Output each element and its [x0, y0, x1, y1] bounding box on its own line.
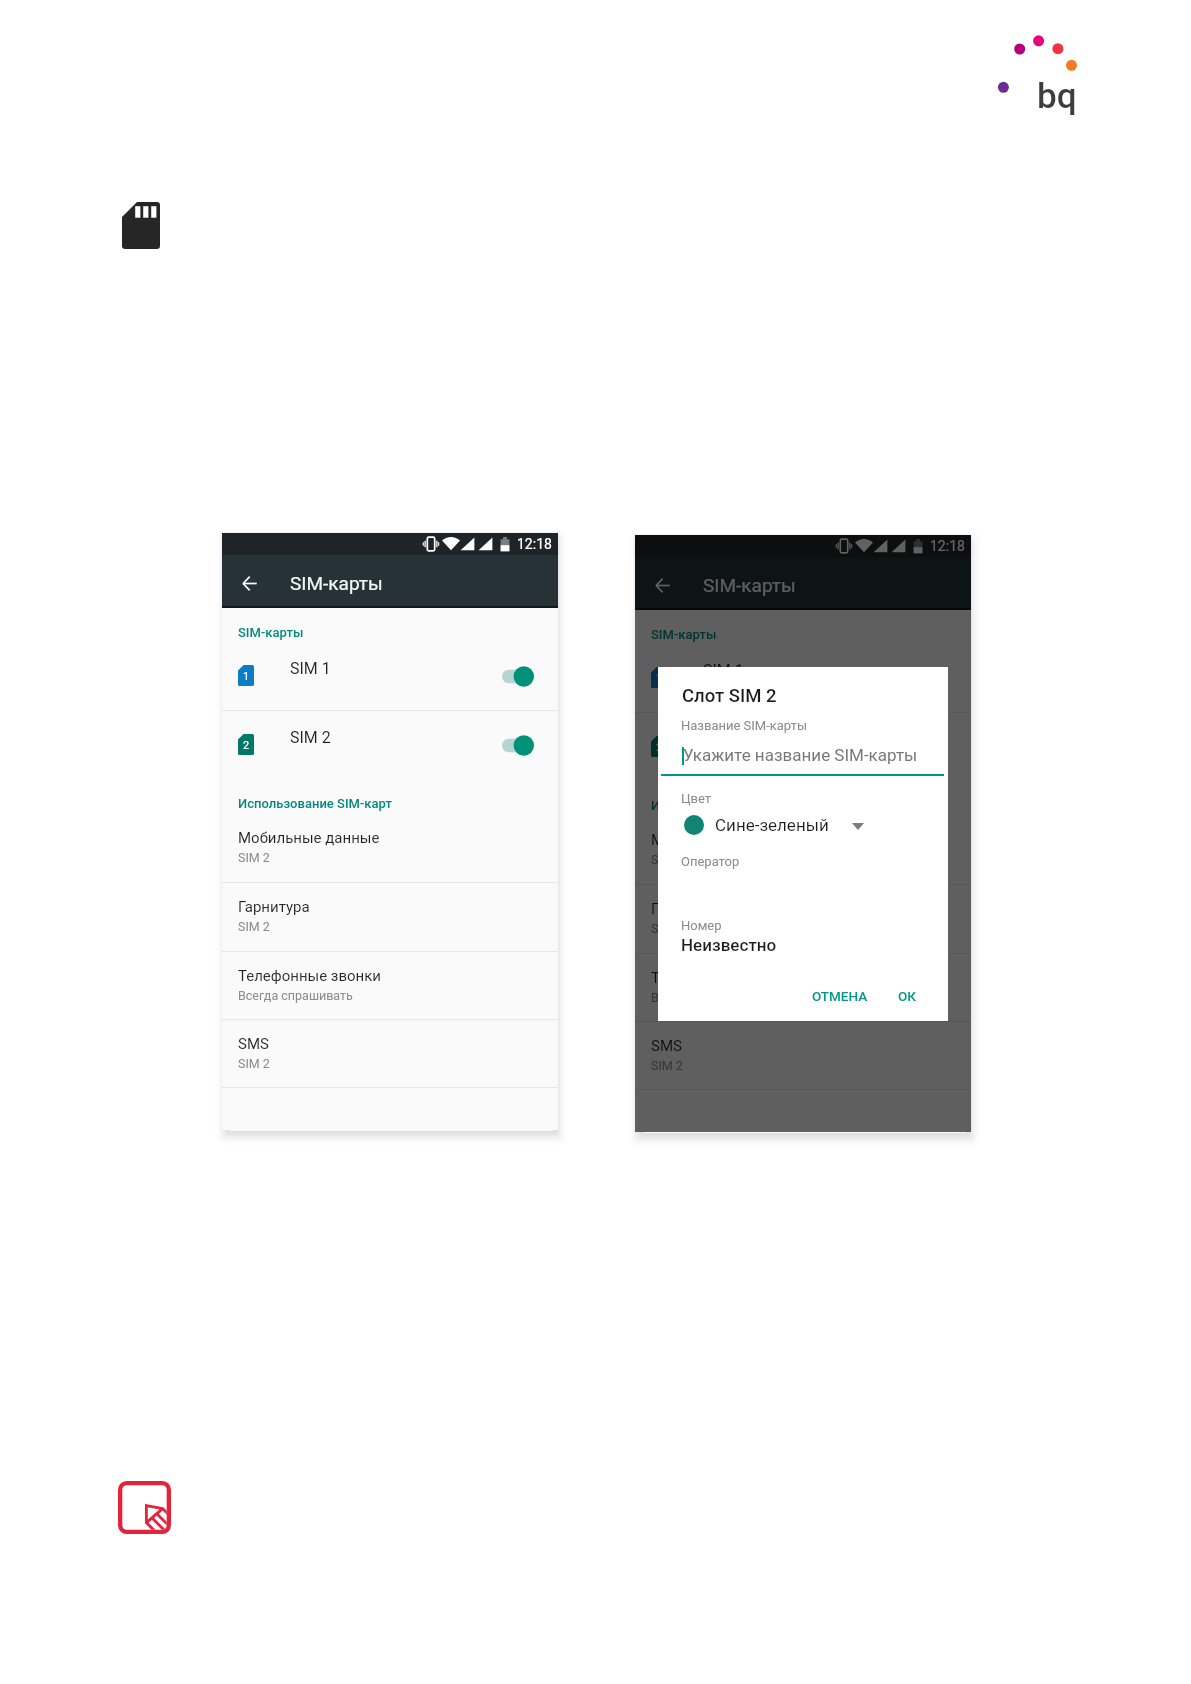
staticText: Слот SIM 2 — [682, 685, 777, 707]
staticText: SIM-карты — [238, 625, 304, 640]
staticText: SMS — [651, 1037, 682, 1055]
staticText: SIM-карты — [703, 574, 796, 596]
button[interactable]: Toggle SIM 1 — [906, 663, 956, 695]
staticText: Всегда спрашивать — [238, 988, 353, 1003]
staticText: Мобильные данные — [651, 831, 793, 849]
staticText: SIM 1 — [703, 661, 744, 680]
button[interactable]: Укажите название SIM-карты — [661, 739, 944, 776]
staticText: Телефонные звонки — [651, 969, 795, 987]
button[interactable]: Телефонные звонки — [635, 953, 971, 1021]
button[interactable]: Сине-зеленый — [680, 809, 870, 843]
staticText: SIM 2 — [651, 852, 683, 867]
staticText: SIM-карты — [290, 572, 383, 594]
staticText: SIM 2 — [651, 921, 683, 936]
staticText: Оператор — [681, 854, 740, 869]
button[interactable]: Гарнитура — [222, 882, 558, 951]
staticText: 1 — [243, 670, 250, 683]
staticText: bq — [1037, 76, 1077, 117]
button[interactable]: 2 — [635, 712, 971, 781]
staticText: Использование SIM-карт — [651, 798, 805, 813]
staticText: Сине-зеленый — [715, 815, 829, 835]
staticText: Мобильные данные — [238, 829, 380, 847]
button[interactable]: Мобильные данные — [635, 815, 971, 883]
staticText: SIM 2 — [238, 850, 270, 865]
button[interactable]: SMS — [222, 1019, 558, 1087]
staticText: Гарнитура — [238, 898, 310, 916]
staticText: 2 — [656, 741, 663, 754]
staticText: SIM 2 — [290, 728, 331, 747]
staticText: Название SIM-карты — [681, 718, 808, 733]
staticText: Неизвестно — [681, 935, 777, 955]
staticText: 12:18 — [930, 538, 965, 554]
staticText: ОТМЕНА — [812, 988, 868, 1004]
button[interactable]: 1 — [222, 641, 558, 710]
button[interactable]: ОК — [888, 978, 927, 1014]
button[interactable]: Toggle SIM 2 — [906, 732, 956, 764]
staticText: Использование SIM-карт — [238, 796, 392, 811]
button[interactable]: 1 — [635, 643, 971, 712]
staticText: 1 — [656, 672, 663, 685]
staticText: Укажите название SIM-карты — [683, 745, 918, 765]
button[interactable]: ОТМЕНА — [802, 978, 878, 1014]
button[interactable]: Back — [648, 571, 676, 599]
button[interactable]: 2 — [222, 710, 558, 779]
staticText: SMS — [238, 1035, 269, 1053]
staticText: Номер — [681, 918, 722, 933]
button[interactable]: Телефонные звонки — [222, 951, 558, 1019]
staticText: Цвет — [681, 791, 712, 806]
button[interactable]: Toggle SIM 2 — [493, 730, 543, 762]
staticText: 12:18 — [517, 536, 552, 552]
staticText: SIM 2 — [238, 919, 270, 934]
staticText: SIM 2 — [651, 1058, 683, 1073]
button[interactable]: Гарнитура — [635, 884, 971, 953]
staticText: Гарнитура — [651, 900, 723, 918]
staticText: SIM 2 — [238, 1056, 270, 1071]
staticText: Всегда спрашивать — [651, 990, 766, 1005]
button[interactable]: Back — [235, 569, 263, 597]
button[interactable]: SMS — [635, 1021, 971, 1089]
staticText: Телефонные звонки — [238, 967, 382, 985]
staticText: ОК — [898, 988, 917, 1004]
staticText: SIM 1 — [290, 659, 331, 678]
staticText: 2 — [243, 739, 250, 752]
button[interactable]: Мобильные данные — [222, 813, 558, 881]
staticText: SIM-карты — [651, 627, 717, 642]
button[interactable]: Toggle SIM 1 — [493, 661, 543, 693]
button[interactable]: Notes — [118, 1481, 171, 1534]
